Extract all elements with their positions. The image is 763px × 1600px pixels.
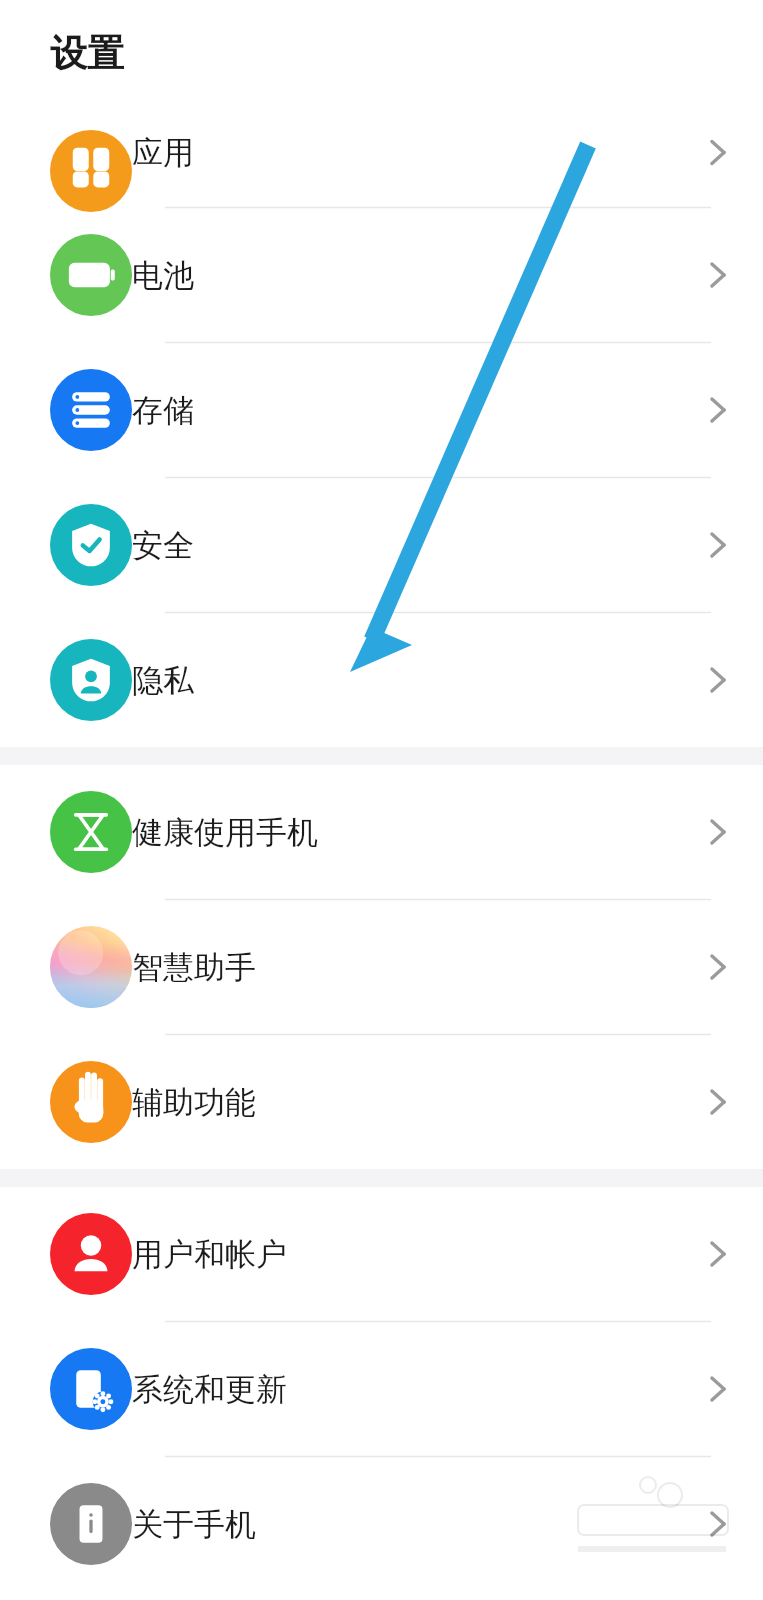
other: 存储 — [683, 343, 763, 477]
button[interactable]: 智慧助手 — [0, 900, 763, 1034]
staticText: 健康使用手机 — [132, 813, 318, 852]
other: 应用 — [683, 98, 763, 207]
button[interactable]: 安全 — [0, 478, 763, 612]
other: 系统和更新 — [683, 1322, 763, 1456]
button[interactable]: 存储 — [0, 343, 763, 477]
staticText: 安全 — [132, 526, 194, 565]
staticText: 存储 — [132, 391, 194, 430]
other: 隐私 — [683, 613, 763, 747]
button[interactable]: 辅助功能 — [0, 1035, 763, 1169]
button[interactable]: 健康使用手机 — [0, 765, 763, 899]
staticText: 用户和帐户 — [132, 1235, 287, 1274]
staticText: 电池 — [132, 256, 194, 295]
button[interactable]: 隐私 — [0, 613, 763, 747]
other: 辅助功能 — [683, 1035, 763, 1169]
other: 关于手机 — [683, 1457, 763, 1591]
button[interactable]: 用户和帐户 — [0, 1187, 763, 1321]
button[interactable]: 系统和更新 — [0, 1322, 763, 1456]
staticText: 智慧助手 — [132, 948, 256, 987]
other: 健康使用手机 — [683, 765, 763, 899]
other: 电池 — [683, 208, 763, 342]
button[interactable]: 电池 — [0, 208, 763, 342]
staticText: 隐私 — [132, 661, 194, 700]
other: 智慧助手 — [683, 900, 763, 1034]
staticText: 关于手机 — [132, 1505, 256, 1544]
staticText: 系统和更新 — [132, 1370, 287, 1409]
staticText: 应用 — [132, 133, 194, 172]
staticText: 设置 — [50, 30, 124, 77]
other: 用户和帐户 — [683, 1187, 763, 1321]
button[interactable]: 关于手机 — [0, 1457, 763, 1591]
staticText: 辅助功能 — [132, 1083, 256, 1122]
button[interactable]: 应用 — [0, 98, 763, 207]
other: 安全 — [683, 478, 763, 612]
